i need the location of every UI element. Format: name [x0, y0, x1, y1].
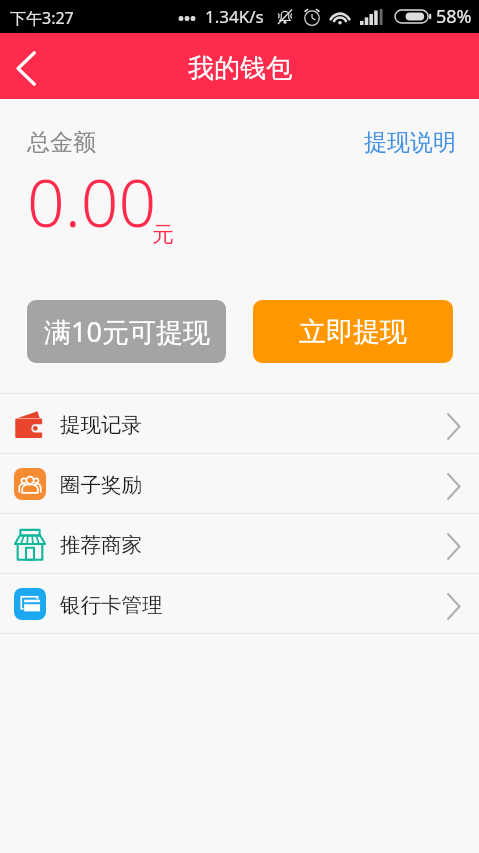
staticText: 1.34K/s [205, 5, 264, 28]
button[interactable]: 圈子奖励 [0, 454, 479, 513]
staticText: 我的钱包 [188, 52, 292, 85]
staticText: 提现说明 [364, 128, 456, 157]
staticText: 58% [436, 4, 472, 29]
staticText: 圈子奖励 [60, 472, 142, 498]
staticText: 立即提现 [299, 315, 407, 349]
staticText: 银行卡管理 [60, 592, 163, 618]
staticText: 推荐商家 [60, 532, 142, 558]
staticText: 总金额 [27, 128, 96, 157]
button[interactable]: 银行卡管理 [0, 574, 479, 633]
button[interactable]: Back [0, 33, 56, 99]
staticText: 下午3:27 [10, 7, 74, 29]
staticText: 0.00 [27, 156, 157, 246]
staticText: 元 [152, 221, 174, 249]
button[interactable]: 满10元可提现 [27, 300, 226, 363]
staticText: 提现记录 [60, 412, 142, 438]
button[interactable]: 提现记录 [0, 394, 479, 453]
staticText: 满10元可提现 [44, 313, 210, 350]
button[interactable]: 立即提现 [253, 300, 453, 363]
staticText: ••• [178, 7, 197, 29]
button[interactable]: 推荐商家 [0, 514, 479, 573]
button[interactable]: 提现说明 [364, 128, 456, 157]
